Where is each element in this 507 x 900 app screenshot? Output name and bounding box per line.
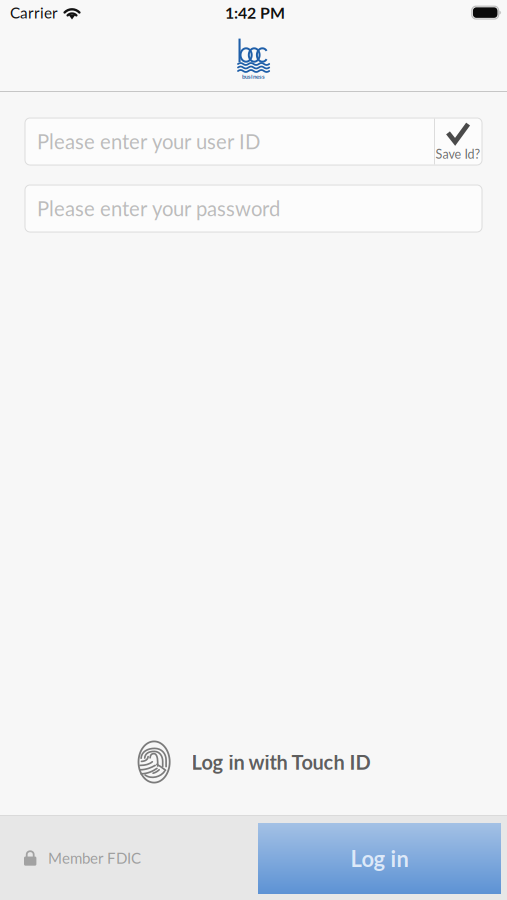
staticText: Carrier [10,3,58,22]
staticText: Member FDIC [48,849,141,867]
button[interactable]: Log in [258,823,501,894]
staticText: business [242,73,265,80]
button[interactable]: Save Id? [434,118,482,164]
staticText: Log in [350,845,408,872]
staticText: Please enter your password [37,196,280,221]
staticText: Please enter your user ID [37,129,260,154]
staticText: Save Id? [435,146,480,161]
button[interactable]: Log in with Touch ID [136,740,370,784]
staticText: 1:42 PM [225,3,285,22]
staticText: Log in with Touch ID [191,750,370,774]
